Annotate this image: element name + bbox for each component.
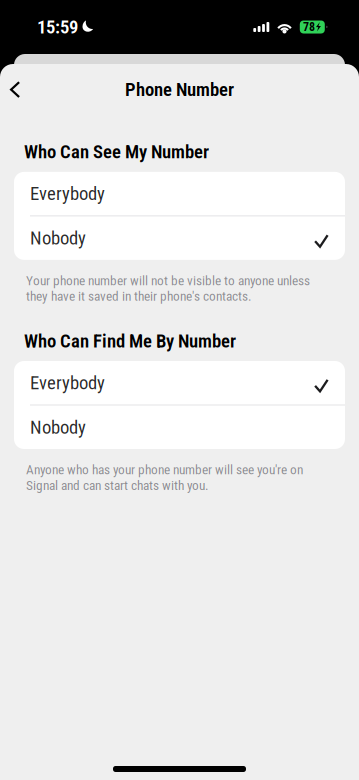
staticText: Nobody [30, 227, 86, 249]
staticText: Phone Number [125, 79, 234, 100]
button[interactable]: Nobody [14, 216, 345, 260]
button[interactable]: Back [0, 71, 30, 107]
button[interactable]: Nobody [14, 405, 345, 449]
staticText: Nobody [30, 416, 86, 438]
staticText: Who Can See My Number [24, 141, 209, 163]
staticText: Anyone who has your phone number will se… [26, 462, 303, 493]
staticText: Everybody [30, 372, 105, 394]
staticText: 15:59 [37, 16, 78, 38]
button[interactable]: Everybody [14, 361, 345, 404]
button[interactable]: Everybody [14, 172, 345, 215]
staticText: Everybody [30, 183, 105, 205]
staticText: Who Can Find Me By Number [24, 330, 236, 352]
staticText: Your phone number will not be visible to… [26, 273, 310, 304]
staticText: 78 [303, 20, 315, 34]
